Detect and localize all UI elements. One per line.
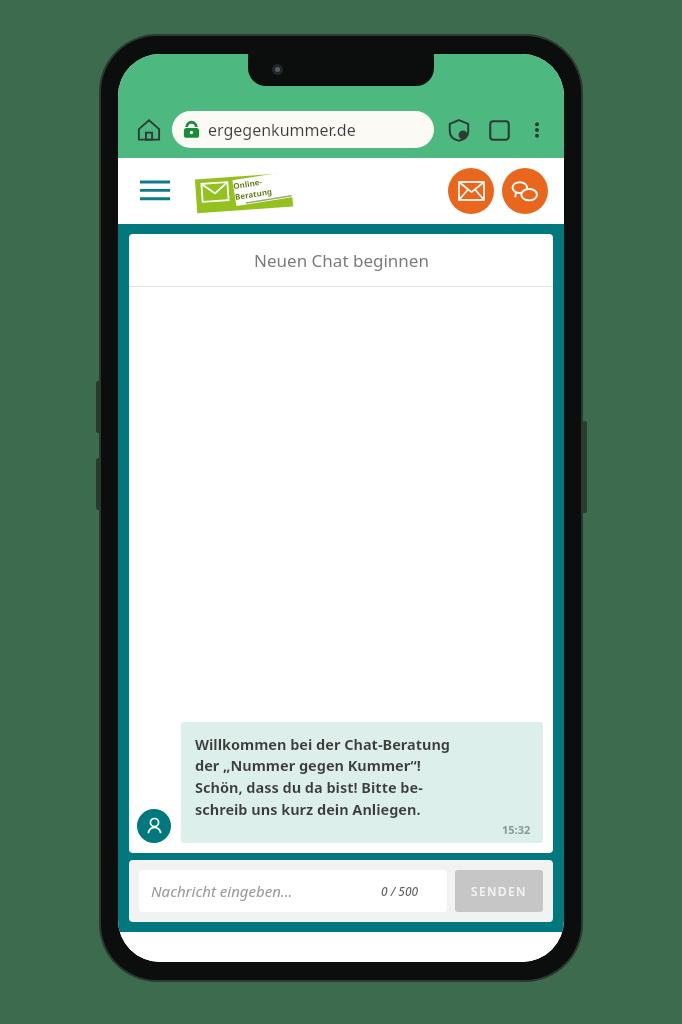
staticText: Nachricht eingeben... (151, 881, 293, 901)
staticText: 0 / 500 (381, 883, 419, 899)
button[interactable]: Email (448, 168, 494, 214)
staticText: Neuen Chat beginnen (254, 249, 429, 272)
button[interactable]: Menu (134, 170, 176, 212)
staticText: SENDEN (471, 883, 527, 899)
button[interactable]: Home (132, 113, 166, 147)
button[interactable]: Online-Beratung (192, 166, 304, 216)
staticText: Online-Beratung (232, 170, 301, 202)
button[interactable]: Neuen Chat beginnen (129, 234, 553, 286)
staticText: Willkommen bei der Chat-Beratung der „Nu… (195, 734, 451, 820)
button[interactable]: Nachricht eingeben... (139, 870, 447, 912)
button[interactable]: Ad blocker (444, 115, 474, 145)
button[interactable]: Tabs (484, 115, 514, 145)
button[interactable]: Advisor (137, 809, 171, 843)
button[interactable]: SENDEN (455, 870, 543, 912)
staticText: 15:32 (502, 822, 531, 837)
staticText: ergegenkummer.de (208, 119, 356, 141)
button[interactable]: Chat (502, 168, 548, 214)
button[interactable]: More options (524, 117, 550, 143)
button[interactable]: ergegenkummer.de (172, 111, 434, 148)
